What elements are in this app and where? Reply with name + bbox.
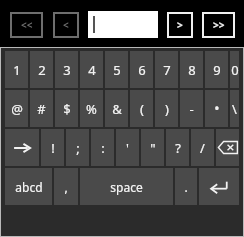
button[interactable]: space <box>80 168 173 205</box>
staticText: % <box>86 100 97 118</box>
staticText: @ <box>11 100 23 118</box>
staticText: • <box>214 99 220 118</box>
button[interactable]: Tab <box>5 129 39 166</box>
button[interactable] <box>88 11 158 38</box>
button[interactable]: • <box>205 90 228 127</box>
button[interactable]: # <box>30 90 53 127</box>
button[interactable]: First <box>10 12 43 38</box>
staticText: \ <box>232 100 237 118</box>
staticText: ( <box>140 100 144 118</box>
staticText: 5 <box>113 61 121 79</box>
button[interactable]: 1 <box>5 51 28 88</box>
staticText: # <box>37 100 46 118</box>
staticText: ! <box>51 139 55 157</box>
staticText: $ <box>63 100 71 118</box>
button[interactable]: Backspace <box>216 129 239 166</box>
staticText: 3 <box>63 61 71 79</box>
button[interactable]: : <box>91 129 114 166</box>
button[interactable]: ' <box>116 129 139 166</box>
staticText: ) <box>165 100 169 118</box>
staticText: ; <box>76 139 80 157</box>
staticText: , <box>64 179 68 195</box>
staticText: 9 <box>213 61 221 79</box>
button[interactable]: 4 <box>80 51 103 88</box>
staticText: 2 <box>38 61 46 79</box>
button[interactable]: @ <box>5 90 28 127</box>
staticText: / <box>200 139 205 157</box>
button[interactable]: abcd <box>5 168 52 205</box>
staticText: < <box>63 18 69 32</box>
button[interactable]: 7 <box>155 51 178 88</box>
staticText: 0 <box>231 61 239 79</box>
staticText: : <box>101 139 105 157</box>
button[interactable]: ! <box>41 129 64 166</box>
staticText: " <box>150 139 156 157</box>
button[interactable]: \ <box>230 90 239 127</box>
button[interactable]: & <box>105 90 128 127</box>
button[interactable]: - <box>180 90 203 127</box>
button[interactable]: ) <box>155 90 178 127</box>
button[interactable]: " <box>141 129 164 166</box>
button[interactable]: Last <box>202 12 235 38</box>
staticText: << <box>21 18 33 32</box>
button[interactable]: ; <box>66 129 89 166</box>
button[interactable]: / <box>191 129 214 166</box>
button[interactable]: Enter <box>199 168 239 205</box>
button[interactable]: 5 <box>105 51 128 88</box>
staticText: 8 <box>188 61 196 79</box>
button[interactable]: 3 <box>55 51 78 88</box>
staticText: 4 <box>88 61 96 79</box>
button[interactable]: 9 <box>205 51 228 88</box>
staticText: space <box>110 179 143 195</box>
staticText: 1 <box>13 61 21 79</box>
button[interactable]: ( <box>130 90 153 127</box>
button[interactable]: 0 <box>230 51 239 88</box>
staticText: - <box>189 100 194 118</box>
staticText: & <box>112 100 122 118</box>
button[interactable]: $ <box>55 90 78 127</box>
staticText: 6 <box>138 61 146 79</box>
staticText: ' <box>126 139 129 157</box>
button[interactable]: Next <box>167 12 193 38</box>
staticText: > <box>177 18 183 32</box>
staticText: . <box>184 179 188 195</box>
button[interactable]: . <box>175 168 197 205</box>
button[interactable]: 8 <box>180 51 203 88</box>
staticText: 7 <box>163 61 171 79</box>
staticText: abcd <box>15 179 43 195</box>
button[interactable]: , <box>54 168 78 205</box>
staticText: >> <box>213 18 225 32</box>
button[interactable]: 6 <box>130 51 153 88</box>
button[interactable]: ? <box>166 129 189 166</box>
button[interactable]: % <box>80 90 103 127</box>
button[interactable]: Previous <box>53 12 79 38</box>
staticText: ? <box>175 139 181 157</box>
button[interactable]: 2 <box>30 51 53 88</box>
